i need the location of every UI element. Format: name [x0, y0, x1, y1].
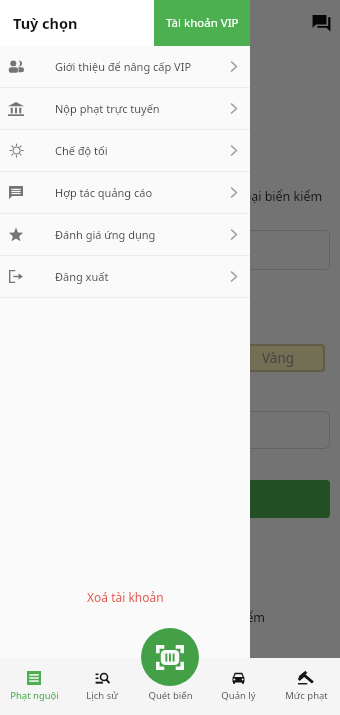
staticText: Tra cứu phạt nguội theo biển kiểm — [63, 609, 265, 626]
button[interactable]: Quét biển — [141, 628, 199, 686]
button[interactable]: Xoá tài khoản — [0, 577, 250, 617]
button[interactable]: Quản lý — [204, 658, 272, 715]
button[interactable]: Nộp phạt trực tuyến — [0, 88, 250, 129]
staticText: Đăng xuất — [55, 269, 219, 284]
button[interactable]: Đánh giá ứng dụng — [0, 214, 250, 255]
staticText: Tuỳ chọn — [13, 13, 78, 33]
button[interactable]: Chế độ tối — [0, 130, 250, 171]
staticText: Xoá tài khoản — [87, 589, 164, 605]
staticText: Hợp tác quảng cáo — [55, 185, 219, 200]
staticText: Quản lý — [221, 689, 256, 702]
staticText: Nhập thông tin loại biển kiểm — [148, 188, 323, 205]
staticText: Lịch sử — [86, 689, 118, 702]
button[interactable]: Tin nhắn — [308, 9, 334, 35]
staticText: Mức phạt — [285, 689, 328, 702]
button[interactable]: Hợp tác quảng cáo — [0, 172, 250, 213]
staticText: Giới thiệu để nâng cấp VIP — [55, 59, 219, 74]
staticText: Đánh giá ứng dụng — [55, 227, 219, 242]
staticText: Phạt nguội — [10, 689, 59, 702]
button[interactable]: Lịch sử — [68, 658, 136, 715]
staticText: Tài khoản VIP — [166, 15, 239, 31]
button[interactable]: Tài khoản VIP — [154, 0, 250, 46]
button[interactable]: Phạt nguội — [0, 658, 68, 715]
button[interactable]: Quét biển — [136, 658, 204, 715]
button[interactable]: Đăng xuất — [0, 256, 250, 297]
button[interactable]: Giới thiệu để nâng cấp VIP — [0, 46, 250, 87]
staticText: Nộp phạt trực tuyến — [55, 101, 219, 116]
staticText: Vàng — [262, 349, 295, 367]
button[interactable]: Mức phạt — [272, 658, 340, 715]
staticText: Chế độ tối — [55, 143, 219, 158]
staticText: Quét biển — [148, 689, 193, 702]
